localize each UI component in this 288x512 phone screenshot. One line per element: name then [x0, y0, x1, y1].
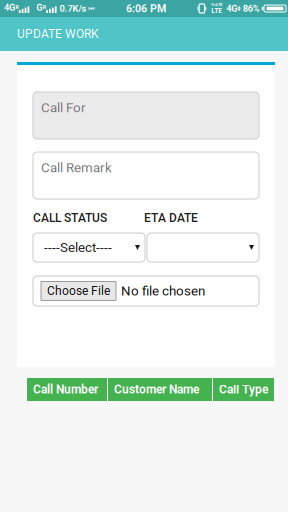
staticText: Call For	[41, 100, 86, 116]
staticText: ----Select----	[44, 240, 112, 255]
staticText: 4G	[4, 2, 15, 13]
staticText: Call Number	[33, 382, 98, 397]
staticText: Choose File	[47, 284, 110, 298]
staticText: CALL STATUS	[33, 211, 107, 225]
button[interactable]: Call Remark	[33, 152, 259, 199]
staticText: ETA DATE	[144, 211, 198, 225]
staticText: VoLTE	[211, 2, 222, 7]
staticText: 0.7K/s	[60, 3, 87, 14]
staticText: LTE	[211, 7, 222, 15]
staticText: R	[43, 4, 46, 10]
staticText: Customer Name	[114, 382, 199, 397]
staticText: UPDATE WORK	[17, 27, 99, 41]
staticText: 4G	[226, 3, 237, 14]
button[interactable]: Choose File	[33, 276, 259, 306]
button[interactable]: Call For	[33, 92, 259, 139]
staticText: 6:06 PM	[126, 2, 166, 15]
button[interactable]: ----Select----	[33, 233, 145, 262]
staticText: Call Type	[219, 382, 268, 397]
staticText: R	[15, 4, 18, 10]
staticText: 86%	[243, 3, 260, 14]
button[interactable]	[147, 233, 259, 262]
staticText: Call Remark	[41, 160, 112, 176]
staticText: No file chosen	[121, 283, 205, 299]
staticText: G	[36, 2, 42, 13]
